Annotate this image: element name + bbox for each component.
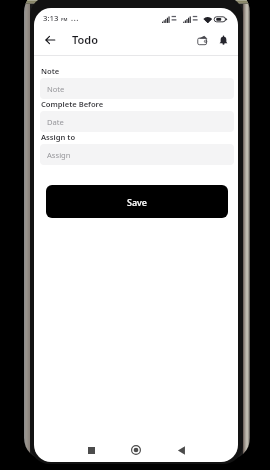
staticText: Todo <box>72 32 98 47</box>
button[interactable]: Wallet <box>192 30 212 50</box>
button[interactable]: Assign <box>40 144 234 165</box>
button[interactable]: Home <box>124 438 148 462</box>
button[interactable]: Note <box>40 78 234 99</box>
staticText: Note <box>41 66 60 76</box>
button[interactable]: Save <box>46 185 228 218</box>
staticText: Save <box>127 196 148 208</box>
staticText: Complete Before <box>41 99 104 109</box>
staticText: Note <box>47 84 65 94</box>
button[interactable]: Recents <box>79 438 103 462</box>
button[interactable]: Date <box>40 111 234 132</box>
staticText: PM <box>61 17 68 23</box>
staticText: Assign <box>47 150 71 160</box>
staticText: Date <box>47 117 64 127</box>
staticText: 3:13 <box>43 13 59 24</box>
button[interactable]: Back <box>169 438 193 462</box>
staticText: Assign to <box>41 132 76 142</box>
button[interactable]: Notifications <box>213 30 233 50</box>
button[interactable]: Back <box>39 29 61 51</box>
